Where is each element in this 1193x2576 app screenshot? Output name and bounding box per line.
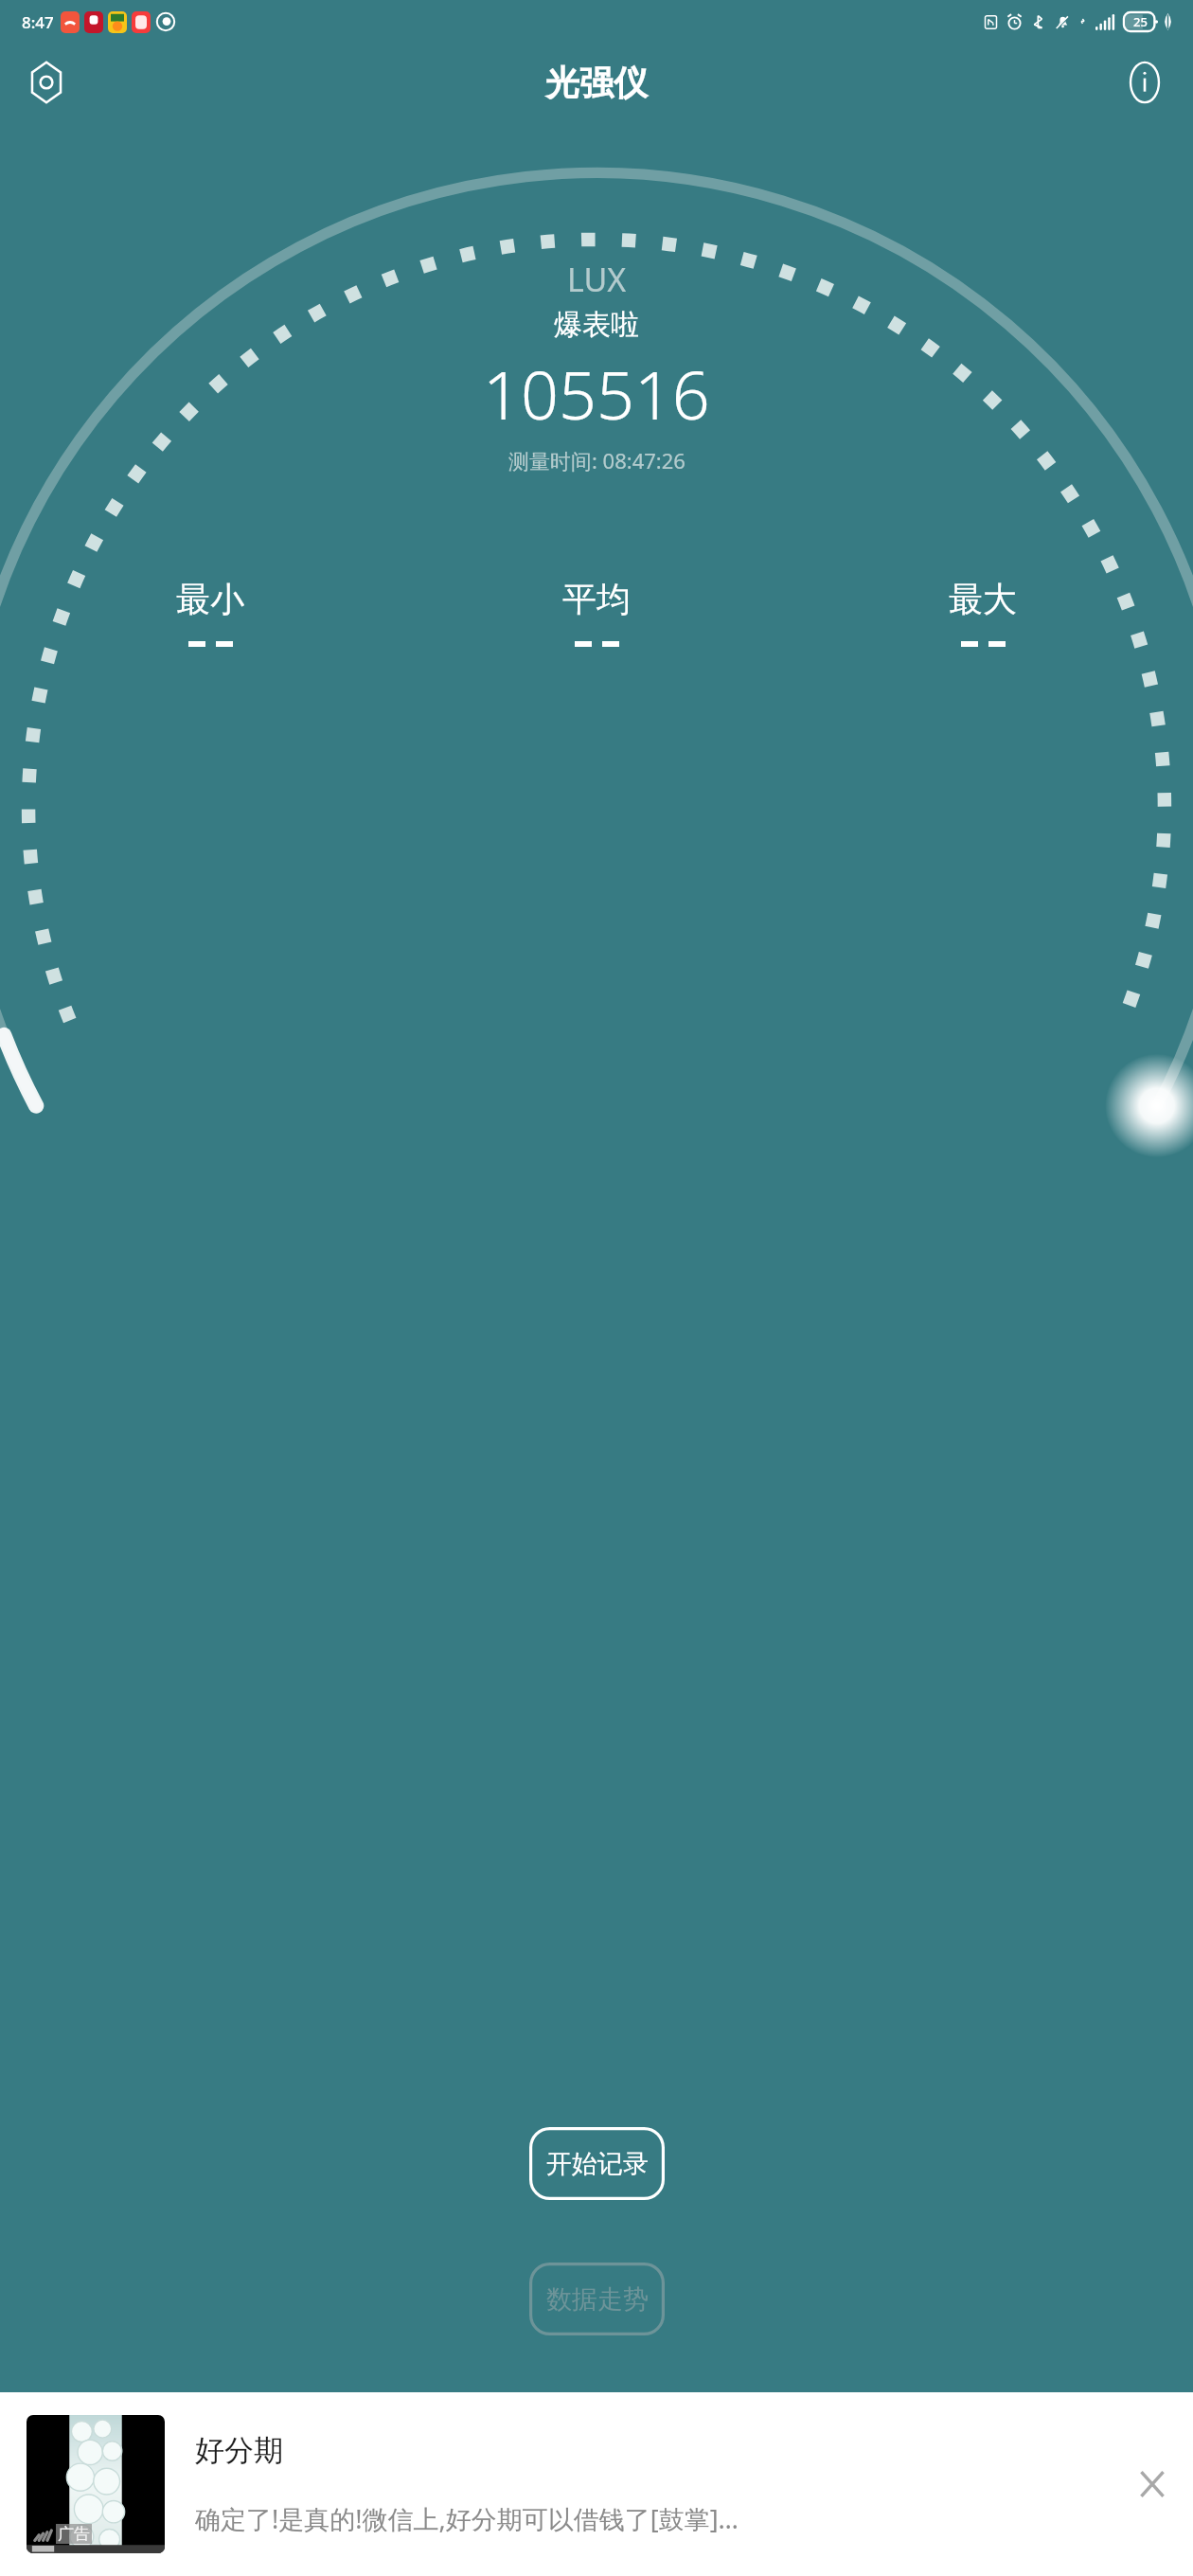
button[interactable]: Info — [1117, 55, 1172, 110]
staticText: 最大 — [949, 578, 1017, 620]
staticText: 25 — [1133, 13, 1148, 30]
button[interactable]: 最大 — [790, 578, 1176, 647]
button[interactable]: Close ad — [1119, 2451, 1185, 2517]
staticText: 开始记录 — [546, 2148, 649, 2180]
staticText: 平均 — [562, 578, 631, 620]
button[interactable]: Sensor settings — [17, 53, 76, 112]
staticText: 确定了!是真的!微信上,好分期可以借钱了[鼓掌]… — [195, 2501, 739, 2536]
staticText: 好分期 — [195, 2432, 283, 2469]
button[interactable]: 数据走势 — [529, 2263, 665, 2335]
staticText: 8:47 — [22, 11, 54, 33]
staticText: 光强仪 — [545, 62, 648, 104]
staticText: 测量时间: 08:47:26 — [508, 446, 686, 474]
button[interactable]: 开始记录 — [529, 2127, 665, 2200]
button[interactable]: 广告 — [0, 2392, 1193, 2576]
staticText: 最小 — [176, 578, 244, 620]
button[interactable]: 平均 — [403, 578, 790, 647]
staticText: 105516 — [483, 349, 710, 438]
button[interactable]: 最小 — [17, 578, 403, 647]
staticText: 广告 — [58, 2524, 90, 2544]
staticText: 爆表啦 — [554, 307, 639, 343]
staticText: 数据走势 — [546, 2283, 649, 2316]
staticText: LUX — [567, 258, 627, 301]
